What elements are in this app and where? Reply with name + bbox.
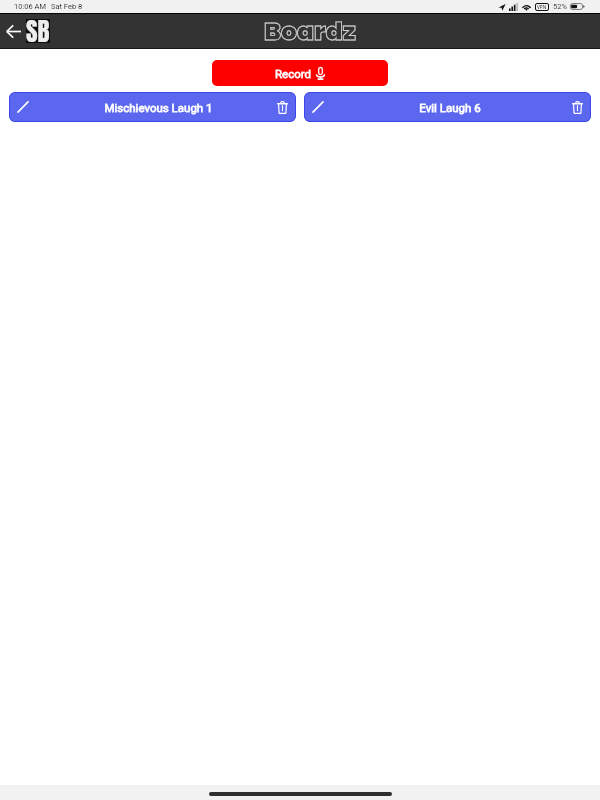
- staticText: Record: [275, 67, 312, 80]
- button[interactable]: Mischievous Laugh 1: [9, 92, 296, 122]
- button[interactable]: SoundBoard home: [26, 19, 50, 43]
- button[interactable]: Edit: [14, 98, 32, 116]
- button[interactable]: Edit: [309, 98, 327, 116]
- button[interactable]: Back: [5, 20, 22, 42]
- staticText: Evil Laugh 6: [419, 101, 481, 114]
- staticText: Sat Feb 8: [51, 2, 83, 11]
- button[interactable]: Delete: [568, 98, 586, 116]
- button[interactable]: Delete: [273, 98, 291, 116]
- button[interactable]: Record: [212, 60, 388, 86]
- staticText: SB: [26, 13, 50, 51]
- staticText: Boardz: [264, 14, 356, 49]
- button[interactable]: Evil Laugh 6: [304, 92, 591, 122]
- staticText: Mischievous Laugh 1: [104, 101, 213, 114]
- staticText: VPN: [537, 4, 547, 10]
- staticText: 10:06 AM: [14, 2, 46, 11]
- staticText: 52%: [553, 2, 567, 11]
